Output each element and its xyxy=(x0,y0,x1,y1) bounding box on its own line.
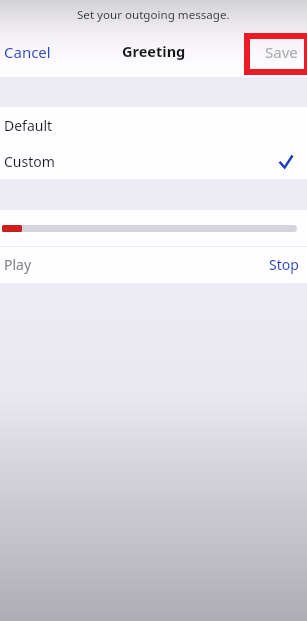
staticText: Set your outgoing message. xyxy=(77,7,230,23)
button[interactable]: Save xyxy=(255,36,307,68)
staticText: Save xyxy=(265,42,298,62)
button[interactable]: Custom xyxy=(0,143,307,179)
button[interactable]: Stop xyxy=(259,248,307,281)
button[interactable]: Default xyxy=(0,107,307,143)
staticText: Cancel xyxy=(4,42,51,62)
staticText: Stop xyxy=(269,255,299,274)
button[interactable]: Cancel xyxy=(0,36,61,68)
staticText: Greeting xyxy=(122,41,186,61)
staticText: Default xyxy=(4,116,53,135)
staticText: Custom xyxy=(4,152,55,171)
staticText: Play xyxy=(4,255,32,274)
